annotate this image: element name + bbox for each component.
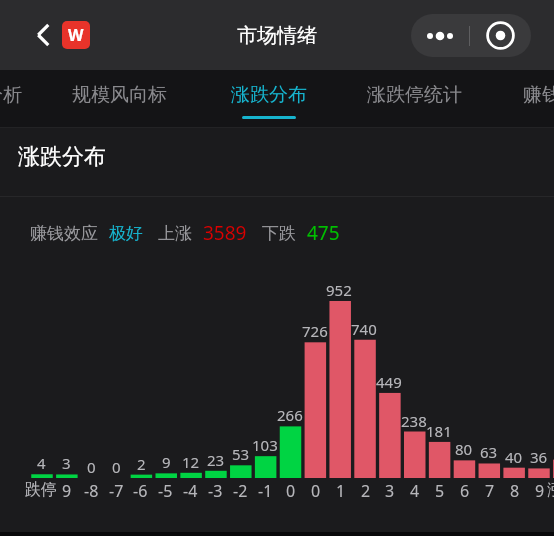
staticText: 40 <box>505 447 523 467</box>
staticText: 952 <box>326 280 352 300</box>
staticText: 449 <box>376 372 402 392</box>
staticText: 1 <box>336 480 346 502</box>
staticText: 跌停 <box>25 480 57 500</box>
staticText: 9 <box>535 480 545 502</box>
button[interactable]: Back <box>26 17 62 53</box>
staticText: 7 <box>485 480 495 502</box>
staticText: -1 <box>258 480 273 502</box>
staticText: 4 <box>37 453 46 473</box>
staticText: 36 <box>530 447 548 467</box>
staticText: 3 <box>385 480 395 502</box>
button[interactable]: More options <box>411 14 469 57</box>
staticText: 极好 <box>109 223 143 244</box>
staticText: 赚钱效应 <box>30 223 98 244</box>
staticText: 103 <box>252 435 278 455</box>
staticText: 3 <box>62 453 71 473</box>
staticText: 2 <box>361 480 371 502</box>
staticText: -3 <box>208 480 223 502</box>
staticText: 涨跌分布 <box>231 83 307 107</box>
staticText: 0 <box>286 480 296 502</box>
staticText: 63 <box>480 442 498 462</box>
staticText: 726 <box>302 321 328 341</box>
button[interactable]: 赚钱 <box>523 70 554 128</box>
staticText: 3589 <box>203 220 247 246</box>
staticText: 0 <box>311 480 321 502</box>
staticText: 0 <box>87 457 96 477</box>
staticText: 6 <box>460 480 470 502</box>
staticText: 475 <box>307 220 340 246</box>
staticText: 分析 <box>0 83 22 107</box>
staticText: 238 <box>401 411 427 431</box>
staticText: 涨跌分布 <box>18 143 106 171</box>
staticText: 0 <box>112 457 121 477</box>
button[interactable]: Weibo logo <box>62 21 90 49</box>
staticText: 9 <box>62 480 72 502</box>
staticText: 上涨 <box>158 223 192 244</box>
staticText: 8 <box>510 480 520 502</box>
staticText: 740 <box>351 319 377 339</box>
staticText: 规模风向标 <box>72 83 167 107</box>
staticText: 266 <box>277 405 303 425</box>
staticText: 赚钱 <box>523 83 554 107</box>
staticText: W <box>68 24 84 46</box>
staticText: 53 <box>232 444 250 464</box>
staticText: -6 <box>133 480 148 502</box>
staticText: 涨停 <box>547 480 554 500</box>
staticText: -8 <box>84 480 99 502</box>
staticText: -2 <box>233 480 248 502</box>
staticText: 80 <box>455 439 473 459</box>
staticText: 9 <box>162 452 171 472</box>
staticText: 12 <box>182 452 200 472</box>
staticText: 23 <box>207 450 225 470</box>
button[interactable]: 涨跌分布 <box>231 70 307 128</box>
button[interactable]: 分析 <box>0 70 22 128</box>
staticText: -7 <box>109 480 124 502</box>
staticText: -4 <box>183 480 198 502</box>
staticText: 下跌 <box>262 223 296 244</box>
staticText: 181 <box>426 421 452 441</box>
button[interactable]: 涨跌停统计 <box>367 70 462 128</box>
staticText: 市场情绪 <box>237 23 317 48</box>
staticText: 2 <box>137 454 146 474</box>
button[interactable]: 规模风向标 <box>72 70 167 128</box>
staticText: -5 <box>158 480 173 502</box>
staticText: 5 <box>435 480 445 502</box>
staticText: 涨跌停统计 <box>367 83 462 107</box>
staticText: 4 <box>410 480 420 502</box>
button[interactable]: Record <box>470 14 531 57</box>
